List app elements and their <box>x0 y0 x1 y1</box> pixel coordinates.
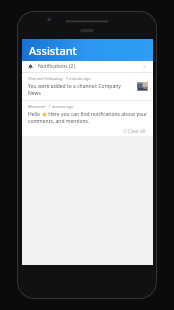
button[interactable]: Clear All <box>121 127 148 135</box>
staticText: Assistant <box>29 43 77 58</box>
button[interactable]: Channel Following · 1 minute ago <box>22 73 153 100</box>
button[interactable]: Notifications (2) <box>22 61 153 72</box>
staticText: Notifications (2) <box>38 63 75 70</box>
staticText: You were added to a channel: Company New… <box>28 83 134 97</box>
staticText: Clear All <box>128 128 146 134</box>
staticText: Welcome · 1 minute ago <box>28 104 74 109</box>
staticText: Channel Following · 1 minute ago <box>28 76 91 81</box>
staticText: comments, and mentions. <box>28 118 90 125</box>
staticText: Here you can find notifications about yo… <box>47 111 148 118</box>
other: Expand notifications <box>142 64 147 69</box>
staticText: Hello <box>28 111 42 118</box>
button[interactable]: Welcome · 1 minute ago <box>22 101 153 136</box>
